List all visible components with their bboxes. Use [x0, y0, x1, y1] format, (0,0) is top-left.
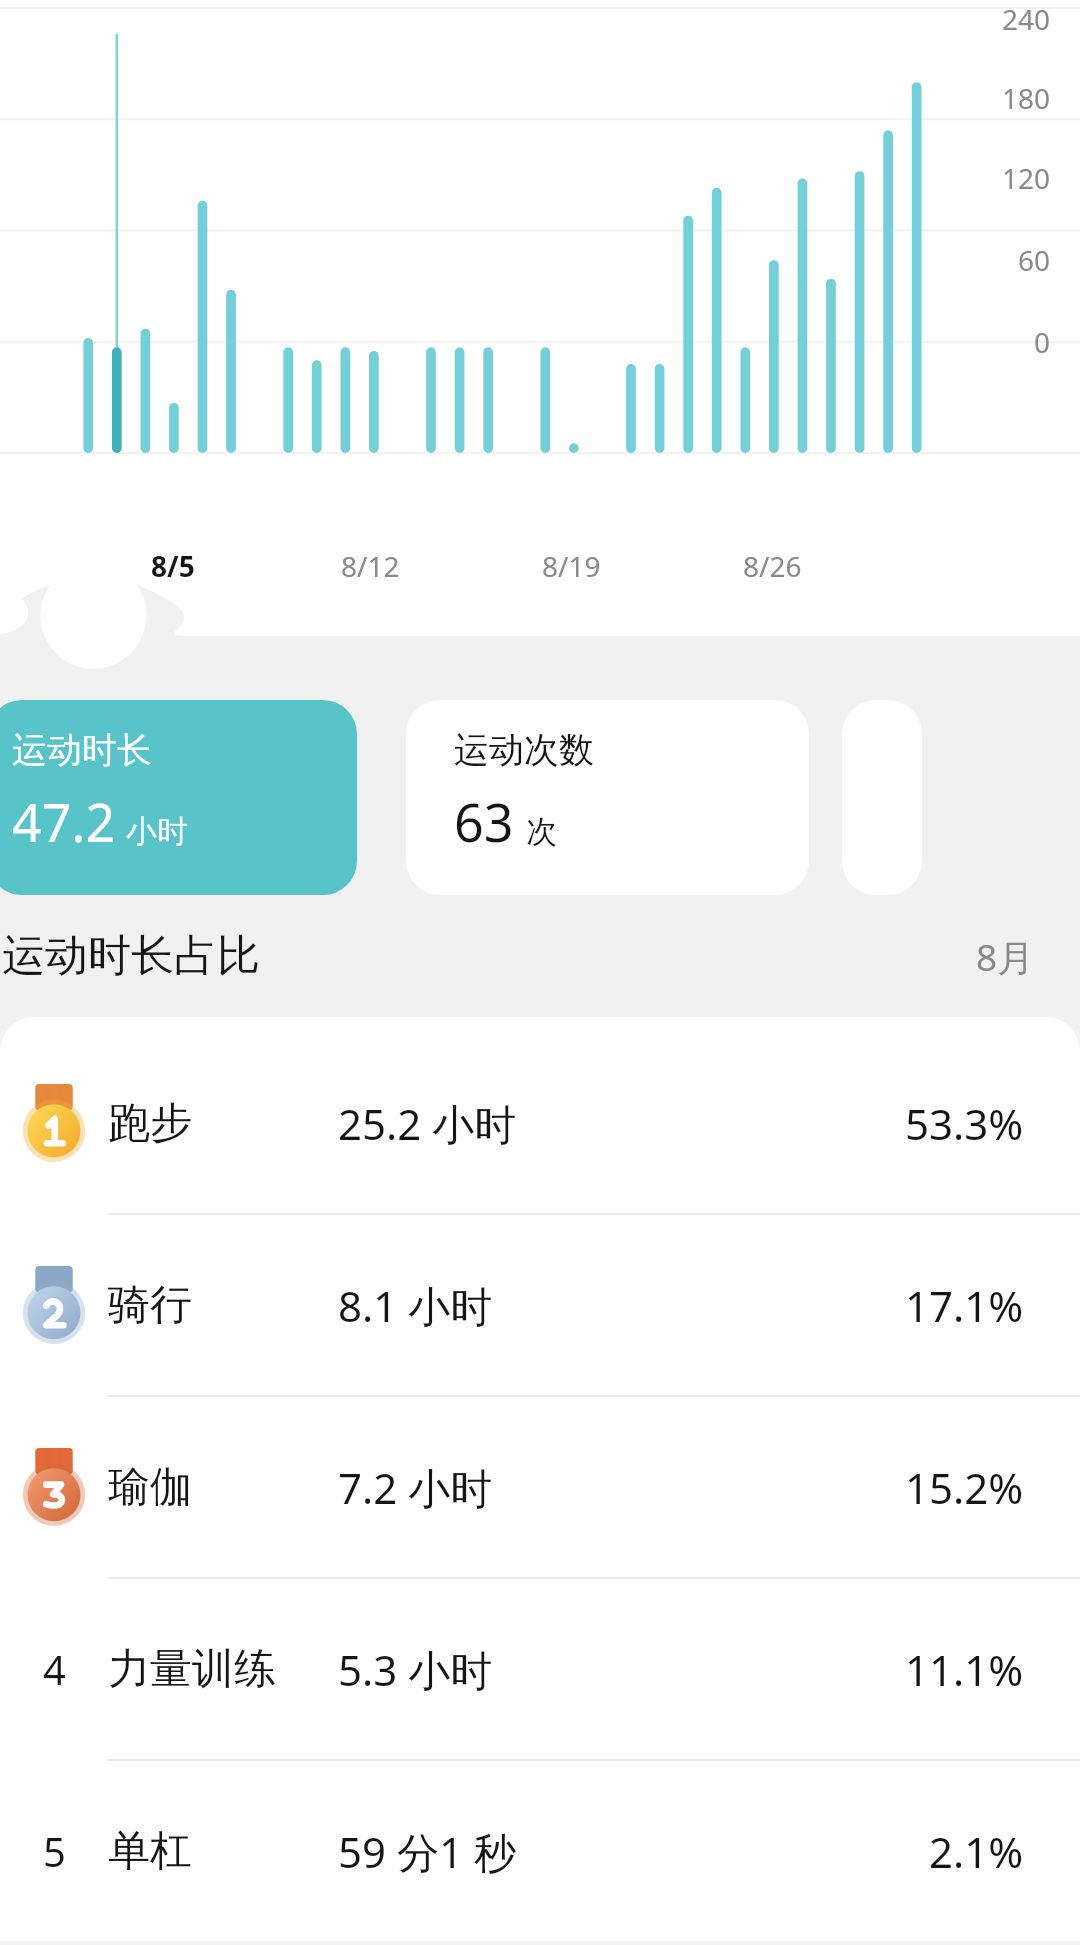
staticText: 力量训练 [108, 1643, 338, 1696]
staticText: 次 [526, 812, 557, 851]
staticText: 120 [1002, 159, 1051, 197]
staticText: 8/5 [151, 547, 195, 585]
staticText: 59 分1 秒 [338, 1823, 929, 1880]
button[interactable]: 运动次数 [406, 700, 809, 895]
staticText: 8/12 [341, 547, 400, 585]
staticText: 小时 [126, 812, 188, 851]
staticText: 单杠 [108, 1825, 338, 1878]
staticText: 8/19 [542, 547, 601, 585]
staticText: 瑜伽 [108, 1461, 338, 1514]
staticText: 运动时长占比 [2, 929, 260, 983]
staticText: 15.2% [905, 1459, 1024, 1516]
other: 第1名 [15, 1084, 93, 1162]
staticText: 5.3 小时 [338, 1641, 905, 1698]
staticText: 180 [1002, 79, 1051, 117]
button[interactable]: 第1名 [0, 1033, 1080, 1213]
staticText: 骑行 [108, 1279, 338, 1332]
staticText: 8.1 小时 [338, 1277, 905, 1334]
staticText: 运动时长 [12, 728, 152, 772]
button[interactable]: 5 [0, 1761, 1080, 1941]
staticText: 跑步 [108, 1097, 338, 1150]
staticText: 25.2 小时 [338, 1095, 905, 1152]
staticText: 2.1% [929, 1823, 1024, 1880]
button[interactable]: 运动时长 [0, 700, 357, 895]
staticText: 5 [43, 1824, 66, 1878]
staticText: 8/26 [743, 547, 802, 585]
staticText: 63 [454, 786, 514, 857]
staticText: 4 [43, 1642, 66, 1696]
staticText: 7.2 小时 [338, 1459, 905, 1516]
staticText: 47.2 [12, 786, 116, 857]
other: 第3名 [15, 1448, 93, 1526]
other: 第2名 [15, 1266, 93, 1344]
staticText: 0 [1034, 323, 1051, 361]
staticText: 8月 [976, 931, 1035, 982]
button[interactable]: 4 [0, 1579, 1080, 1759]
staticText: 240 [1002, 0, 1051, 38]
button[interactable] [842, 700, 922, 895]
staticText: 运动次数 [454, 728, 594, 772]
button[interactable]: 第2名 [0, 1215, 1080, 1395]
button[interactable]: 第3名 [0, 1397, 1080, 1577]
staticText: 17.1% [905, 1277, 1024, 1334]
staticText: 60 [1018, 241, 1051, 279]
staticText: 53.3% [905, 1095, 1024, 1152]
staticText: 11.1% [905, 1641, 1024, 1698]
